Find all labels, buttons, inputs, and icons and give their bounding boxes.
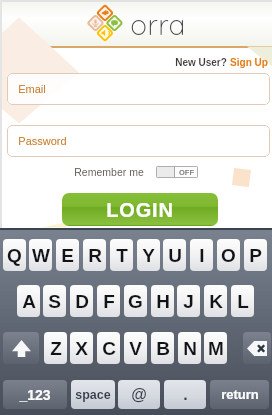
- staticText: B: [156, 338, 170, 359]
- staticText: H: [156, 291, 170, 312]
- staticText: A: [22, 291, 36, 312]
- staticText: K: [209, 291, 223, 312]
- button[interactable]: N: [178, 332, 201, 364]
- button[interactable]: H: [151, 285, 174, 317]
- staticText: T: [116, 245, 128, 266]
- button[interactable]: Remember me toggle, off: [156, 166, 198, 178]
- staticText: return: [221, 387, 259, 402]
- button[interactable]: J: [177, 285, 200, 317]
- staticText: orra: [130, 7, 186, 42]
- staticText: W: [32, 245, 50, 266]
- button[interactable]: A: [17, 285, 40, 317]
- staticText: M: [208, 338, 224, 359]
- button[interactable]: _123: [3, 380, 67, 409]
- button[interactable]: Shift: [3, 332, 39, 364]
- staticText: Email: [18, 83, 46, 95]
- button[interactable]: return: [210, 380, 269, 409]
- button[interactable]: D: [70, 285, 93, 317]
- staticText: I: [199, 245, 205, 266]
- button[interactable]: C: [97, 332, 120, 364]
- staticText: S: [48, 291, 61, 312]
- staticText: R: [88, 245, 102, 266]
- staticText: X: [75, 338, 88, 359]
- button[interactable]: P: [244, 239, 267, 271]
- staticText: .: [183, 386, 188, 404]
- staticText: _123: [19, 387, 51, 403]
- button[interactable]: S: [43, 285, 66, 317]
- button[interactable]: Remember me: [74, 166, 198, 178]
- button[interactable]: Q: [3, 239, 26, 271]
- staticText: V: [129, 338, 142, 359]
- button[interactable]: .: [164, 380, 206, 409]
- button[interactable]: Password: [7, 125, 270, 157]
- staticText: Remember me: [74, 166, 144, 178]
- staticText: Y: [142, 245, 155, 266]
- button[interactable]: V: [124, 332, 147, 364]
- button[interactable]: U: [163, 239, 186, 271]
- staticText: Z: [50, 338, 62, 359]
- staticText: C: [102, 338, 116, 359]
- staticText: F: [103, 291, 115, 312]
- button[interactable]: M: [204, 332, 227, 364]
- staticText: Sign Up: [230, 57, 268, 68]
- button[interactable]: B: [151, 332, 174, 364]
- staticText: U: [168, 245, 182, 266]
- button[interactable]: New User?: [0, 57, 268, 68]
- staticText: O: [221, 245, 236, 266]
- button[interactable]: F: [97, 285, 120, 317]
- button[interactable]: O: [217, 239, 240, 271]
- button[interactable]: @: [118, 380, 160, 409]
- button[interactable]: X: [70, 332, 93, 364]
- staticText: P: [249, 245, 262, 266]
- staticText: N: [183, 338, 197, 359]
- button[interactable]: R: [83, 239, 106, 271]
- button[interactable]: I: [190, 239, 213, 271]
- staticText: New User?: [175, 57, 227, 68]
- button[interactable]: T: [110, 239, 133, 271]
- button[interactable]: space: [71, 380, 115, 409]
- button[interactable]: W: [29, 239, 52, 271]
- staticText: J: [183, 291, 194, 312]
- button[interactable]: Email: [7, 73, 270, 105]
- button[interactable]: Z: [44, 332, 67, 364]
- button[interactable]: Backspace: [243, 332, 271, 364]
- button[interactable]: L: [231, 285, 254, 317]
- staticText: @: [131, 386, 147, 404]
- staticText: Q: [7, 245, 22, 266]
- button[interactable]: LOGIN: [62, 193, 218, 226]
- staticText: E: [61, 245, 74, 266]
- button[interactable]: E: [56, 239, 79, 271]
- button[interactable]: K: [204, 285, 227, 317]
- staticText: LOGIN: [106, 199, 174, 221]
- staticText: D: [75, 291, 89, 312]
- staticText: OFF: [179, 168, 194, 176]
- staticText: L: [237, 291, 249, 312]
- button[interactable]: Y: [137, 239, 160, 271]
- staticText: G: [128, 291, 143, 312]
- staticText: space: [75, 388, 111, 402]
- button[interactable]: G: [124, 285, 147, 317]
- staticText: Password: [18, 135, 67, 147]
